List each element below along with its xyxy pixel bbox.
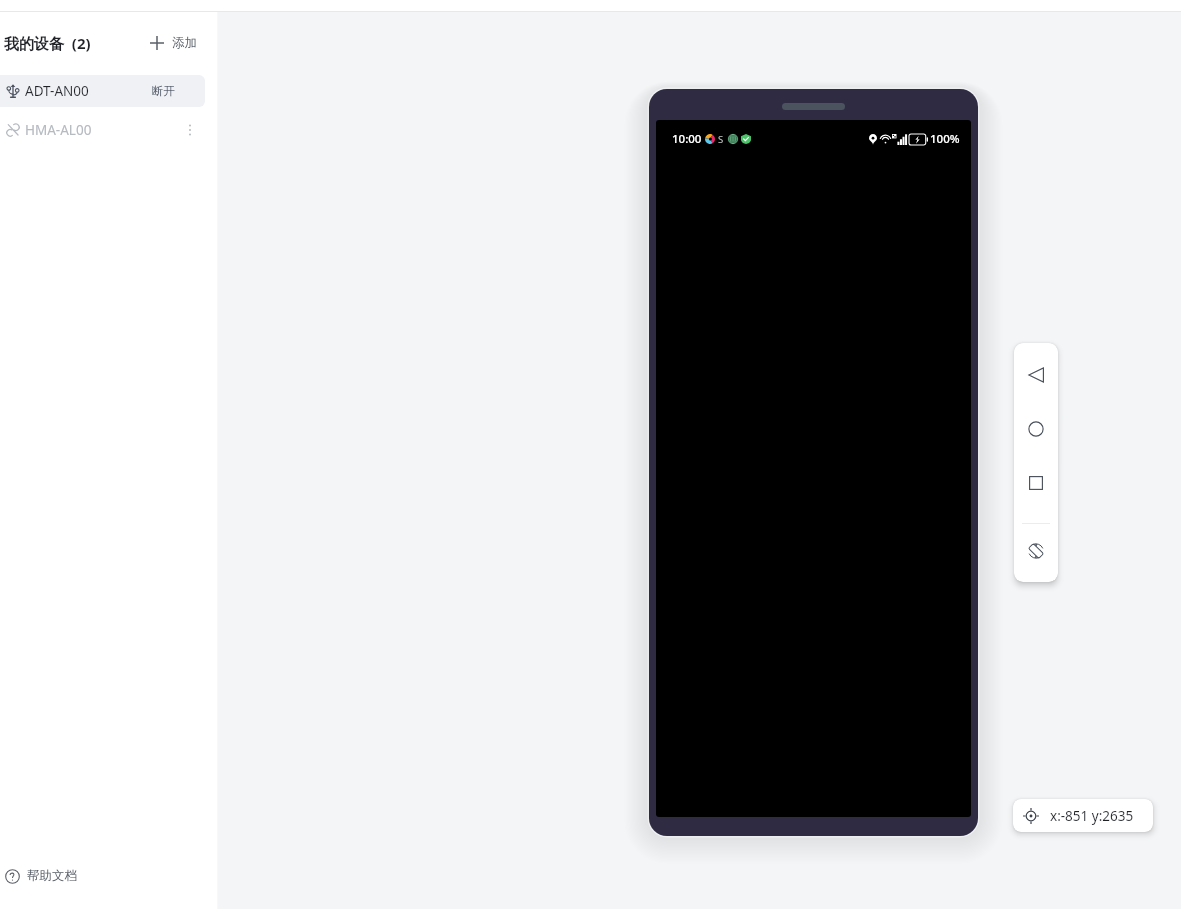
button[interactable]: 帮助文档 [0,857,217,895]
button[interactable]: More options [183,123,197,137]
button[interactable]: x:-851 y:2635 [1013,799,1153,832]
staticText: 10:00 [672,131,702,147]
staticText: 100% [930,131,960,147]
button[interactable]: ADT-AN00 [0,75,205,107]
button[interactable]: Rotate screen [1014,529,1058,573]
staticText: x:-851 y:2635 [1050,807,1134,825]
staticText: 帮助文档 [27,868,77,884]
button[interactable]: Recent apps [1014,461,1058,505]
staticText: ADT-AN00 [25,82,89,100]
staticText: S [718,133,724,146]
button[interactable]: Back [1014,353,1058,397]
staticText: 我的设备 (2) [4,33,91,53]
button[interactable]: 添加 [144,29,203,57]
staticText: 添加 [172,35,197,51]
button[interactable]: HMA-AL00 [0,114,205,146]
staticText: HMA-AL00 [25,121,92,139]
staticText: 断开 [152,84,175,98]
button[interactable]: Home [1014,407,1058,451]
